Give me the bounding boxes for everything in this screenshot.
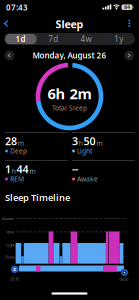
staticText: Total Sleep xyxy=(52,104,87,112)
staticText: REM xyxy=(6,229,14,235)
staticText: 1y xyxy=(114,34,123,44)
staticText: 07:43 xyxy=(6,2,28,13)
button[interactable]: 4w xyxy=(69,33,102,45)
staticText: h xyxy=(79,139,83,148)
staticText: 6h 2m xyxy=(47,84,91,103)
staticText: 28 xyxy=(5,134,17,148)
staticText: 1 xyxy=(5,162,11,176)
staticText: Awake xyxy=(2,216,14,221)
staticText: Deep xyxy=(10,147,27,155)
staticText: Sleep Timeline xyxy=(5,191,70,204)
staticText: Light xyxy=(77,147,92,155)
button[interactable] xyxy=(3,20,9,27)
button[interactable]: 1y xyxy=(102,33,135,45)
staticText: 44 xyxy=(17,162,29,176)
button[interactable] xyxy=(5,51,14,60)
staticText: h xyxy=(12,167,16,176)
staticText: 22:32 xyxy=(10,276,19,281)
staticText: Awake xyxy=(77,175,98,183)
staticText: m xyxy=(18,139,24,148)
staticText: m xyxy=(29,167,35,176)
staticText: 04:35 xyxy=(119,277,128,282)
staticText: 3 xyxy=(72,134,78,148)
staticText: 50 xyxy=(84,134,96,148)
button[interactable]: 7d xyxy=(37,33,70,45)
staticText: -- xyxy=(72,162,78,176)
staticText: Deep xyxy=(5,254,14,260)
staticText: 1d xyxy=(15,34,25,44)
staticText: z xyxy=(13,265,16,273)
staticText: 4w xyxy=(80,34,91,44)
button[interactable] xyxy=(125,18,133,28)
staticText: Sleep xyxy=(55,17,83,31)
staticText: 84 xyxy=(124,4,130,11)
button[interactable]: 1d xyxy=(4,33,37,45)
staticText: Monday, August 26 xyxy=(32,50,106,61)
staticText: REM xyxy=(10,175,24,183)
staticText: 7d xyxy=(48,34,58,44)
staticText: Light xyxy=(6,242,14,248)
staticText: m xyxy=(96,139,102,148)
button[interactable] xyxy=(124,51,134,60)
